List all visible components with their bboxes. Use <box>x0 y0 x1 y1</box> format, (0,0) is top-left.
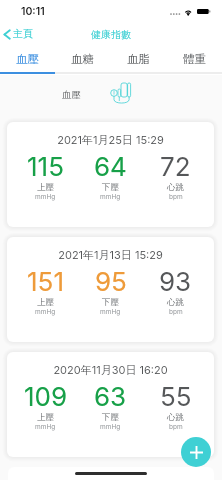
staticText: 血壓 <box>62 89 81 101</box>
button[interactable]: 2021年1月25日 15:29 <box>7 122 214 227</box>
staticText: bpm <box>169 193 183 201</box>
staticText: 72 <box>160 151 191 182</box>
staticText: mmHg <box>35 193 56 201</box>
button[interactable]: 體重 <box>166 46 222 72</box>
staticText: 下壓 <box>102 297 119 308</box>
button[interactable]: 血脂 <box>110 46 166 72</box>
staticText: bpm <box>169 308 183 316</box>
staticText: 上壓 <box>37 412 54 423</box>
button[interactable] <box>8 467 214 480</box>
staticText: 心跳 <box>167 182 184 193</box>
staticText: mmHg <box>35 308 56 316</box>
staticText: 心跳 <box>167 297 184 308</box>
staticText: 血糖 <box>71 52 94 66</box>
staticText: 健康指數 <box>91 28 131 41</box>
staticText: mmHg <box>35 423 56 431</box>
staticText: bpm <box>169 423 183 431</box>
staticText: 2020年11月30日 16:20 <box>7 363 214 377</box>
button[interactable]: 血糖 <box>55 46 110 72</box>
staticText: 體重 <box>183 52 206 66</box>
staticText: 下壓 <box>102 182 119 193</box>
staticText: 上壓 <box>37 182 54 193</box>
staticText: 151 <box>27 266 64 297</box>
button[interactable]: 2021年1月13日 15:29 <box>7 237 214 342</box>
staticText: 109 <box>24 381 68 412</box>
button[interactable]: 2020年11月30日 16:20 <box>7 352 214 457</box>
button[interactable]: Add record <box>181 437 211 467</box>
staticText: 93 <box>159 266 192 297</box>
staticText: 2021年1月25日 15:29 <box>7 133 214 147</box>
staticText: 血壓 <box>16 52 39 66</box>
staticText: mmHg <box>100 423 121 431</box>
staticText: 2021年1月13日 15:29 <box>7 248 214 262</box>
staticText: 95 <box>95 266 127 297</box>
staticText: 血脂 <box>127 52 150 66</box>
staticText: 64 <box>94 151 127 182</box>
staticText: 上壓 <box>37 297 54 308</box>
staticText: 55 <box>160 381 192 412</box>
staticText: 63 <box>94 381 127 412</box>
staticText: 主頁 <box>13 27 33 40</box>
staticText: mmHg <box>100 308 121 316</box>
staticText: 115 <box>27 151 64 182</box>
staticText: 心跳 <box>167 412 184 423</box>
button[interactable]: 血壓 <box>0 46 55 72</box>
button[interactable]: 主頁 <box>3 22 222 44</box>
staticText: mmHg <box>100 193 121 201</box>
staticText: 下壓 <box>102 412 119 423</box>
staticText: 10:11 <box>21 5 45 18</box>
